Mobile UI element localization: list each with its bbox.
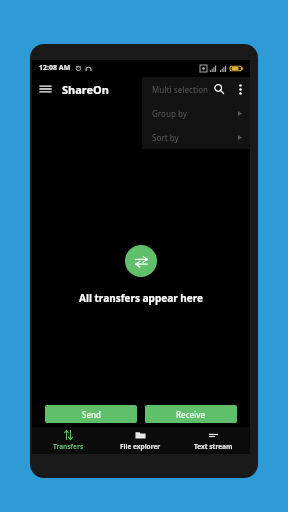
staticText: Send — [82, 409, 101, 420]
button[interactable]: Sort by — [142, 125, 250, 149]
staticText: Group by — [152, 108, 188, 119]
staticText: Transfers — [53, 442, 84, 451]
button[interactable]: Receive — [145, 405, 237, 423]
button[interactable]: Text stream — [177, 427, 250, 454]
button[interactable]: Open navigation drawer — [32, 76, 58, 102]
staticText: Multi selection — [152, 84, 209, 95]
staticText: 12:08 AM — [39, 63, 71, 73]
staticText: Sort by — [152, 132, 179, 143]
button[interactable]: Send — [45, 405, 137, 423]
staticText: All transfers appear here — [79, 291, 203, 305]
staticText: Receive — [176, 409, 206, 420]
button[interactable]: Search — [208, 78, 230, 100]
button[interactable]: Group by — [142, 101, 250, 125]
staticText: Text stream — [194, 442, 233, 451]
staticText: File explorer — [120, 442, 161, 451]
button[interactable]: Multi selection — [142, 77, 250, 101]
button[interactable]: Transfers — [32, 427, 104, 454]
button[interactable]: More options — [230, 79, 250, 99]
staticText: ShareOn — [62, 82, 109, 97]
button[interactable]: File explorer — [104, 427, 177, 454]
